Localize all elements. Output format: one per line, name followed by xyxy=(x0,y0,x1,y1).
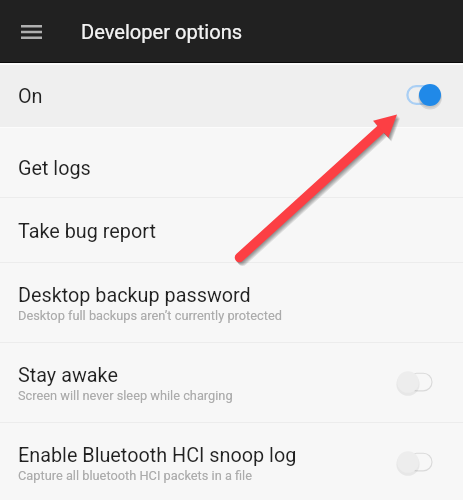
button[interactable]: Open navigation menu xyxy=(14,14,49,49)
button[interactable]: Get logs xyxy=(0,128,463,197)
button[interactable]: Developer options on xyxy=(402,81,448,109)
staticText: Take bug report xyxy=(18,220,156,243)
button[interactable]: Toggle setting xyxy=(394,448,440,476)
staticText: Screen will never sleep while charging xyxy=(18,388,233,403)
staticText: Enable Bluetooth HCI snoop log xyxy=(18,444,297,467)
staticText: Developer options xyxy=(81,20,243,44)
button[interactable]: Stay awake xyxy=(0,343,463,422)
button[interactable]: Toggle setting xyxy=(394,368,440,396)
button[interactable]: Take bug report xyxy=(0,198,463,262)
staticText: Stay awake xyxy=(18,364,118,387)
staticText: Get logs xyxy=(18,157,91,180)
staticText: On xyxy=(18,85,43,108)
button[interactable]: On xyxy=(0,65,463,127)
staticText: Desktop full backups aren’t currently pr… xyxy=(18,308,282,323)
button[interactable]: Desktop backup password xyxy=(0,263,463,342)
staticText: Desktop backup password xyxy=(18,284,251,307)
staticText: Capture all bluetooth HCI packets in a f… xyxy=(18,468,253,483)
button[interactable]: Enable Bluetooth HCI snoop log xyxy=(0,423,463,500)
